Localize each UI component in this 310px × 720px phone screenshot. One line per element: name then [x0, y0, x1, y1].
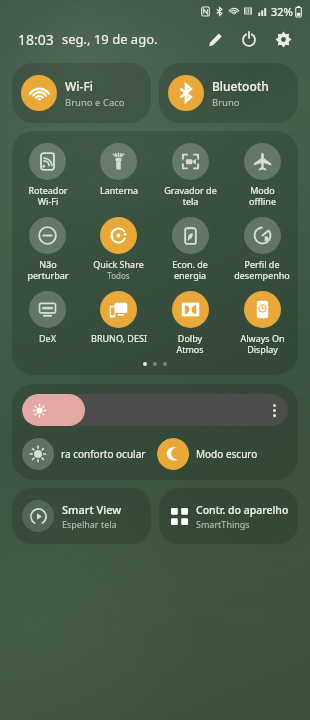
staticText: Espelhar tela: [62, 518, 117, 530]
staticText: SmartThings: [196, 518, 250, 530]
staticText: Não perturbar: [27, 258, 69, 281]
button[interactable]: Perfil de desempenho: [226, 215, 298, 283]
staticText: Bruno e Caco: [65, 96, 125, 109]
staticText: Bluetooth: [212, 78, 269, 94]
button[interactable]: Gravador de tela: [154, 141, 226, 209]
staticText: Smart View: [62, 502, 122, 517]
button[interactable]: Dolby Atmos: [154, 289, 226, 357]
button[interactable]: Desligar: [236, 26, 262, 52]
button[interactable]: Smart View: [12, 488, 151, 544]
staticText: Wi-Fi: [65, 78, 93, 94]
button[interactable]: DeX: [12, 289, 83, 346]
staticText: Gravador de tela: [164, 184, 217, 207]
button[interactable]: Lanterna: [83, 141, 154, 198]
button[interactable]: ra conforto ocular: [22, 438, 153, 470]
staticText: Roteador Wi-Fi: [28, 184, 68, 207]
button[interactable]: Configurações: [270, 26, 296, 52]
staticText: Contr. do aparelho: [196, 503, 289, 517]
staticText: Modo offline: [249, 184, 276, 207]
staticText: Bruno Watch: [212, 96, 292, 109]
staticText: Econ. de energia: [172, 258, 208, 281]
staticText: seg., 19 de ago.: [62, 30, 158, 48]
button[interactable]: Econ. de energia: [154, 215, 226, 283]
button[interactable]: Modo offline: [226, 141, 298, 209]
staticText: BRUNO, DESI: [91, 332, 147, 344]
button[interactable]: Bluetooth: [159, 63, 298, 123]
staticText: DeX: [39, 332, 56, 344]
button[interactable]: Contr. do aparelho: [159, 488, 298, 544]
button[interactable]: Always On Display: [226, 289, 298, 357]
staticText: Modo escuro: [196, 447, 258, 461]
staticText: Todos: [107, 270, 130, 281]
button[interactable]: Quick Share: [83, 215, 154, 283]
staticText: 32%: [271, 4, 293, 19]
staticText: Dolby Atmos: [176, 332, 204, 355]
staticText: 18:03: [18, 30, 54, 49]
button[interactable]: Editar: [202, 26, 228, 52]
staticText: Perfil de desempenho: [234, 258, 290, 281]
button[interactable]: Brilho: [22, 394, 288, 426]
button[interactable]: BRUNO, DESI: [83, 289, 154, 346]
button[interactable]: Não perturbar: [12, 215, 83, 283]
staticText: Lanterna: [100, 184, 138, 196]
staticText: Quick Share: [93, 258, 144, 270]
staticText: ra conforto ocular: [61, 447, 146, 461]
button[interactable]: Wi-Fi: [12, 63, 151, 123]
button[interactable]: Roteador Wi-Fi: [12, 141, 83, 209]
button[interactable]: Modo escuro: [157, 438, 288, 470]
staticText: Always On Display: [240, 332, 285, 355]
